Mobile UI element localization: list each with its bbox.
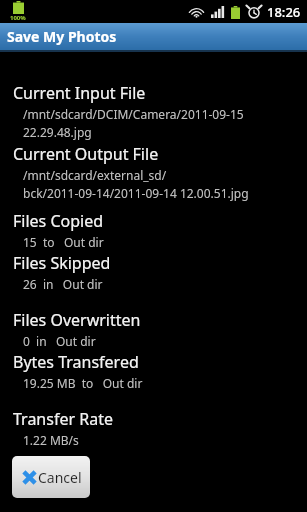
staticText: Current Output File — [13, 143, 159, 165]
staticText: Files Skipped — [13, 252, 111, 274]
staticText: Files Copied — [13, 210, 104, 232]
button[interactable]: Cancel — [12, 456, 90, 498]
staticText: bck/2011-09-14/2011-09-14 12.00.51.jpg — [23, 185, 249, 201]
staticText: 100% — [10, 14, 26, 22]
staticText: Cancel — [38, 468, 82, 487]
staticText: 18:26 — [267, 3, 301, 21]
staticText: Current Input File — [13, 82, 146, 104]
staticText: Files Overwritten — [13, 309, 141, 331]
staticText: /mnt/sdcard/external_sd/ — [23, 167, 167, 183]
staticText: 0 in Out dir — [23, 333, 96, 349]
staticText: Save My Photos — [7, 27, 117, 46]
staticText: 26 in Out dir — [23, 276, 103, 292]
staticText: 19.25 MB to Out dir — [23, 375, 143, 391]
staticText: 22.29.48.jpg — [23, 124, 92, 140]
staticText: 15 to Out dir — [23, 234, 104, 250]
staticText: Bytes Transfered — [13, 351, 139, 373]
staticText: 1.22 MB/s — [23, 432, 79, 448]
staticText: /mnt/sdcard/DCIM/Camera/2011-09-15 — [23, 106, 244, 122]
staticText: Transfer Rate — [13, 408, 113, 430]
